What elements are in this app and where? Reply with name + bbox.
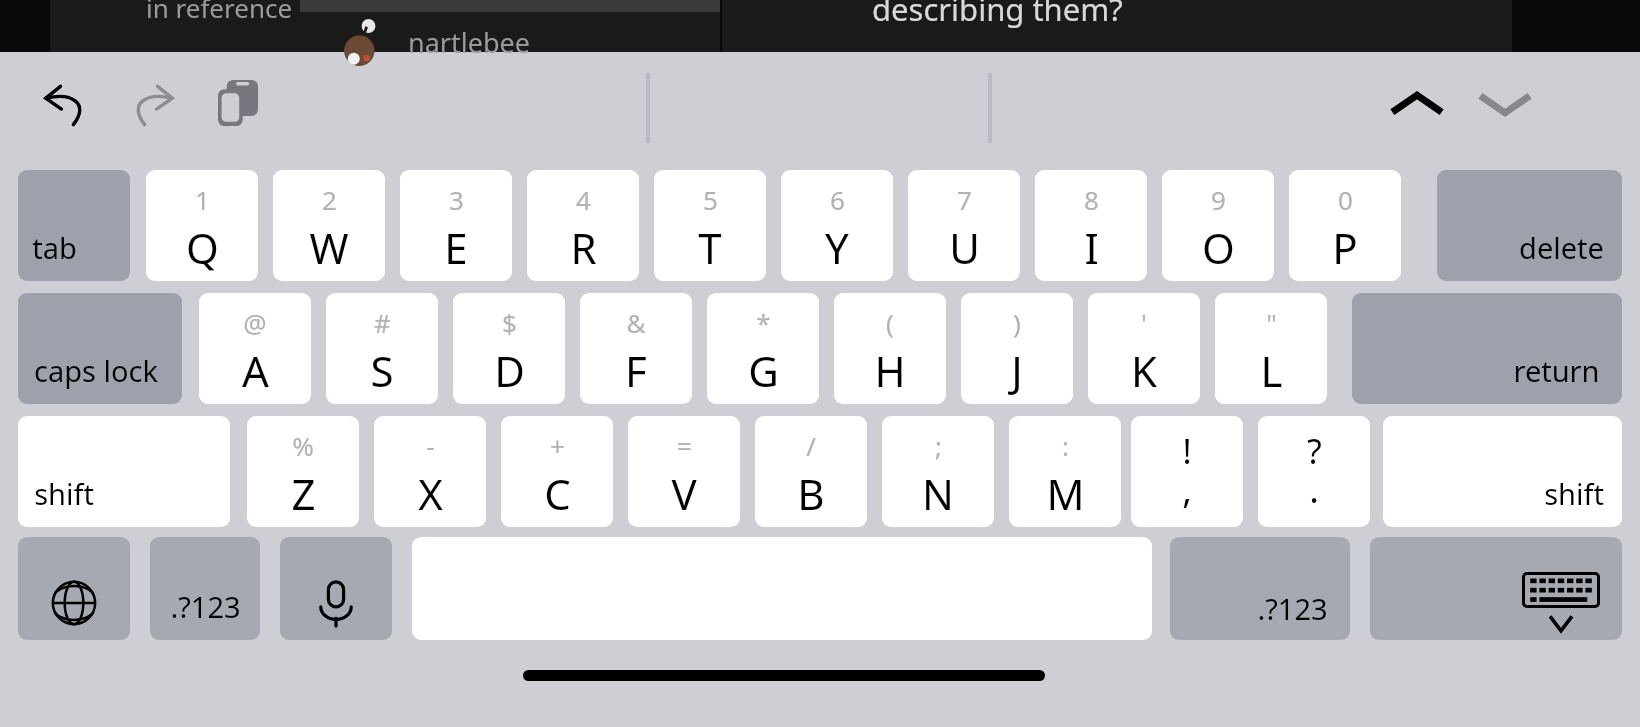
staticText: = [677, 428, 692, 463]
button[interactable]: delete [1437, 170, 1622, 281]
staticText: / [806, 428, 816, 463]
staticText: A [242, 342, 269, 399]
staticText: % [292, 428, 314, 463]
staticText: M [1046, 465, 1085, 522]
staticText: describing them? [872, 0, 1123, 30]
staticText: .?123 [1257, 589, 1328, 628]
staticText: Y [825, 219, 849, 276]
button[interactable]: Redo [124, 78, 180, 130]
staticText: T [698, 219, 722, 276]
button[interactable]: ! [1131, 416, 1243, 527]
button[interactable]: Previous [1386, 82, 1448, 126]
button[interactable]: $ [453, 293, 565, 404]
staticText: shift [1544, 474, 1604, 513]
staticText: delete [1519, 228, 1604, 267]
button[interactable]: tab [18, 170, 130, 281]
button[interactable]: 6 [781, 170, 893, 281]
staticText: F [625, 342, 647, 399]
staticText: ! [1182, 428, 1192, 474]
staticText: tab [32, 228, 77, 267]
staticText: 4 [576, 182, 591, 217]
button[interactable]: 9 [1162, 170, 1274, 281]
button[interactable]: " [1215, 293, 1327, 404]
staticText: L [1260, 342, 1283, 399]
staticText: 7 [957, 182, 972, 217]
button[interactable]: caps lock [18, 293, 182, 404]
button[interactable]: ; [882, 416, 994, 527]
staticText: V [671, 465, 697, 522]
staticText: 1 [195, 182, 210, 217]
staticText: . [1309, 465, 1319, 514]
staticText: H [874, 342, 906, 399]
button[interactable]: ( [834, 293, 946, 404]
button[interactable]: 0 [1289, 170, 1401, 281]
staticText: shift [34, 474, 94, 513]
button[interactable]: * [707, 293, 819, 404]
staticText: O [1202, 219, 1235, 276]
button[interactable]: # [326, 293, 438, 404]
staticText: nartlebee [408, 24, 530, 61]
staticText: W [309, 219, 349, 276]
button[interactable]: Hide keyboard [1370, 537, 1622, 640]
staticText: U [949, 219, 980, 276]
button[interactable]: : [1009, 416, 1121, 527]
staticText: 9 [1211, 182, 1226, 217]
staticText: Q [186, 219, 219, 276]
button[interactable]: % [247, 416, 359, 527]
staticText: ? [1307, 428, 1322, 474]
staticText: return [1513, 351, 1600, 390]
button[interactable]: 3 [400, 170, 512, 281]
staticText: 3 [449, 182, 464, 217]
staticText: J [1011, 342, 1023, 399]
button[interactable]: ' [1088, 293, 1200, 404]
staticText: $ [502, 305, 517, 340]
button[interactable]: 7 [908, 170, 1020, 281]
button[interactable]: 4 [527, 170, 639, 281]
button[interactable]: ? [1258, 416, 1370, 527]
staticText: E [444, 219, 468, 276]
button[interactable]: ) [961, 293, 1073, 404]
button[interactable]: Paste [210, 75, 266, 131]
staticText: 0 [1338, 182, 1353, 217]
button[interactable]: Dictation [280, 537, 392, 640]
staticText: ; [935, 428, 942, 463]
button[interactable]: + [501, 416, 613, 527]
button[interactable]: return [1352, 293, 1622, 404]
button[interactable]: .?123 [150, 537, 260, 640]
staticText: 2 [322, 182, 337, 217]
button[interactable]: Next [1474, 82, 1536, 126]
staticText: , [1182, 465, 1192, 514]
button[interactable]: @ [199, 293, 311, 404]
staticText: # [374, 305, 391, 340]
button[interactable]: - [374, 416, 486, 527]
staticText: R [570, 219, 597, 276]
staticText: K [1131, 342, 1157, 399]
staticText: I [1084, 219, 1099, 276]
button[interactable]: & [580, 293, 692, 404]
staticText: D [494, 342, 525, 399]
staticText: - [426, 428, 435, 463]
staticText: G [748, 342, 779, 399]
staticText: N [922, 465, 954, 522]
button[interactable]: = [628, 416, 740, 527]
button[interactable]: Undo [38, 78, 94, 130]
staticText: .?123 [170, 587, 241, 626]
staticText: P [1332, 219, 1358, 276]
button[interactable]: 2 [273, 170, 385, 281]
button[interactable]: 8 [1035, 170, 1147, 281]
staticText: @ [243, 305, 267, 340]
button[interactable]: shift [1383, 416, 1622, 527]
button[interactable]: .?123 [1170, 537, 1350, 640]
button[interactable]: 1 [146, 170, 258, 281]
button[interactable]: Switch keyboard language [18, 537, 130, 640]
staticText: ( [886, 305, 894, 340]
button[interactable]: / [755, 416, 867, 527]
staticText: 6 [830, 182, 845, 217]
staticText: & [626, 305, 646, 340]
staticText: ' [1141, 305, 1147, 340]
staticText: " [1266, 305, 1277, 340]
staticText: 5 [703, 182, 718, 217]
button[interactable]: 5 [654, 170, 766, 281]
button[interactable]: shift [18, 416, 230, 527]
